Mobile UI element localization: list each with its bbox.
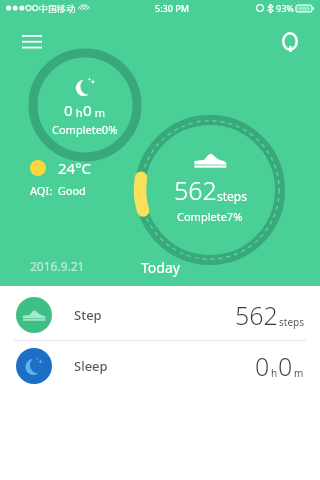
staticText: h: [73, 105, 83, 120]
staticText: m: [92, 105, 106, 120]
staticText: Complete0%: [52, 122, 118, 137]
button[interactable]: Sleep: [0, 341, 320, 391]
staticText: m: [294, 366, 304, 380]
staticText: Today: [141, 258, 180, 277]
staticText: 0: [255, 349, 270, 383]
staticText: 562: [235, 298, 278, 332]
staticText: 24°C: [58, 158, 92, 178]
staticText: 0: [278, 349, 293, 383]
staticText: 93%: [276, 2, 294, 14]
staticText: 562: [174, 173, 217, 207]
button[interactable]: Step: [0, 290, 320, 340]
staticText: h: [271, 366, 278, 380]
staticText: 2016.9.21: [30, 258, 85, 274]
staticText: steps: [217, 188, 247, 204]
staticText: Complete7%: [177, 209, 243, 224]
staticText: 0: [64, 100, 73, 120]
staticText: AQI: Good: [30, 183, 86, 198]
staticText: 中国移动: [39, 3, 75, 14]
staticText: 5:30 PM: [155, 2, 189, 14]
staticText: Step: [74, 306, 102, 324]
button[interactable]: Profile: [270, 22, 310, 62]
button[interactable]: Menu: [12, 22, 52, 62]
staticText: Sleep: [74, 357, 108, 375]
staticText: steps: [279, 315, 304, 329]
staticText: 0: [83, 100, 92, 120]
